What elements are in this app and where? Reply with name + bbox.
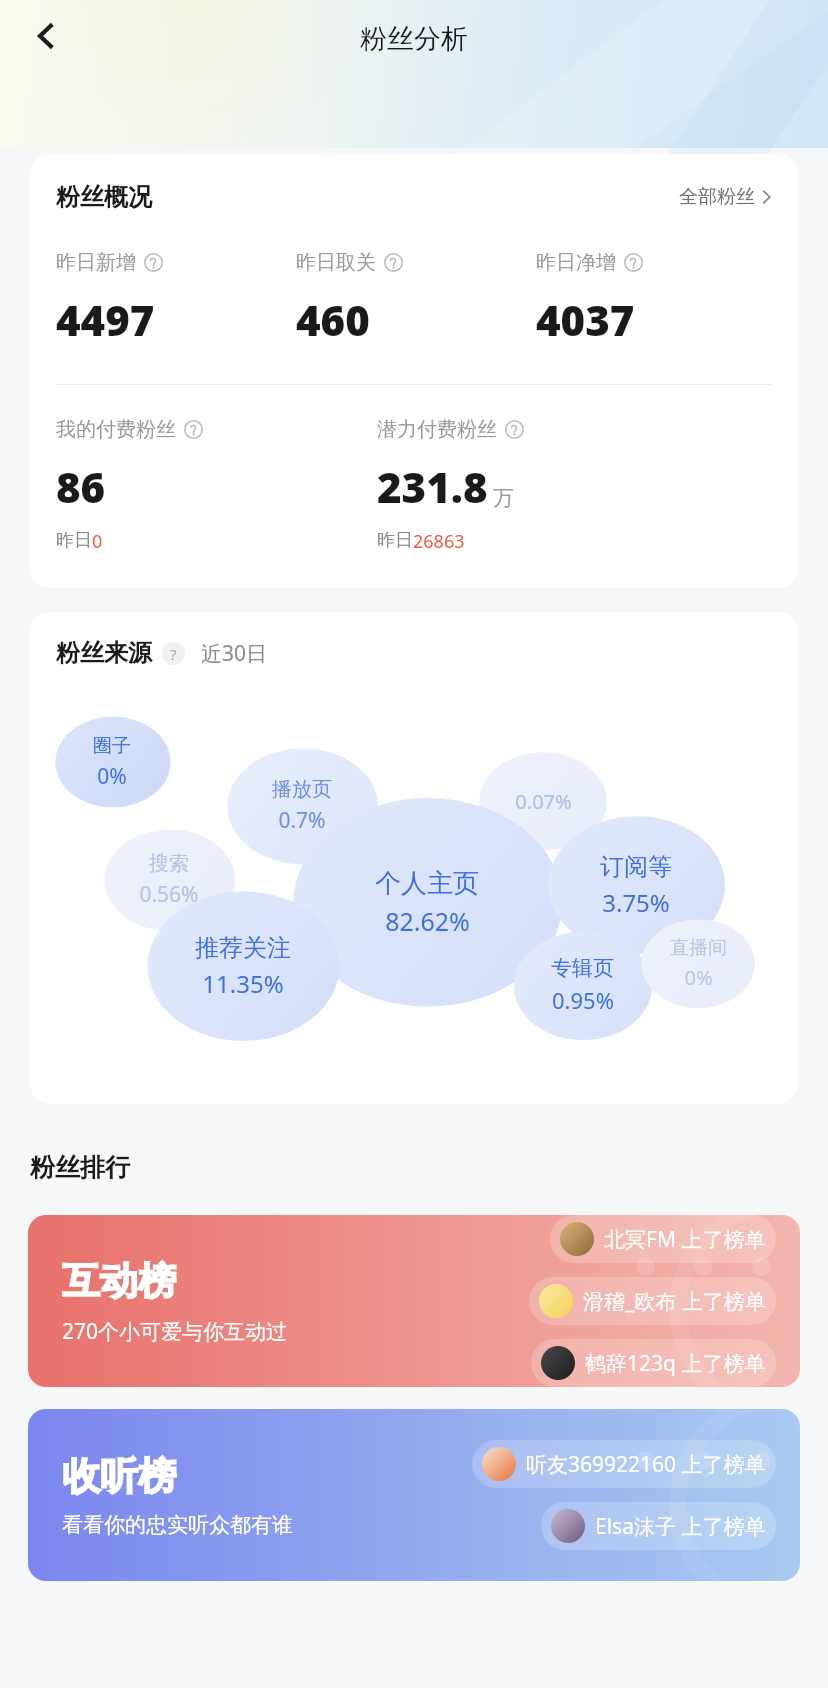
staticText: 专辑页 xyxy=(551,955,614,981)
button[interactable]: 粉丝来源 xyxy=(30,612,798,1104)
staticText: 滑稽_欧布 上了榜单 xyxy=(583,1287,766,1316)
staticText: ? xyxy=(170,644,177,664)
staticText: 直播间 xyxy=(670,936,727,960)
staticText: 昨日 xyxy=(377,529,413,552)
staticText: 11.35% xyxy=(202,967,284,1000)
staticText: 潜力付费粉丝 xyxy=(377,417,497,442)
staticText: 昨日新增 xyxy=(56,250,136,275)
staticText: 我的付费粉丝 xyxy=(56,417,176,442)
staticText: 粉丝来源 xyxy=(56,638,152,668)
staticText: 粉丝排行 xyxy=(30,1152,130,1183)
staticText: 近30日 xyxy=(201,639,268,668)
staticText: 播放页 xyxy=(272,777,332,802)
staticText: 231.8 xyxy=(377,458,488,515)
button[interactable]: 粉丝概况 xyxy=(30,154,798,588)
staticText: 86 xyxy=(56,458,106,515)
staticText: Elsa沫子 上了榜单 xyxy=(595,1512,766,1541)
staticText: 3.75% xyxy=(602,886,670,919)
staticText: 0.7% xyxy=(278,806,326,835)
staticText: 0% xyxy=(684,964,713,991)
staticText: 粉丝分析 xyxy=(360,22,468,56)
button[interactable]: 北冥FM 上了榜单 xyxy=(560,1222,766,1256)
staticText: 昨日净增 xyxy=(536,250,616,275)
staticText: 北冥FM 上了榜单 xyxy=(604,1225,766,1254)
button[interactable]: 全部粉丝 xyxy=(679,185,772,209)
staticText: 270个小可爱与你互动过 xyxy=(62,1317,288,1346)
staticText: 4497 xyxy=(56,291,155,348)
staticText: 鹤辞123q 上了榜单 xyxy=(585,1349,766,1378)
button[interactable]: 鹤辞123q 上了榜单 xyxy=(541,1346,766,1380)
staticText: 全部粉丝 xyxy=(679,185,755,209)
staticText: 460 xyxy=(296,291,370,348)
button[interactable]: Elsa沫子 上了榜单 xyxy=(551,1509,766,1543)
staticText: 看看你的忠实听众都有谁 xyxy=(62,1512,293,1538)
staticText: 昨日 xyxy=(56,529,92,552)
staticText: 昨日取关 xyxy=(296,250,376,275)
staticText: 4037 xyxy=(536,291,635,348)
staticText: 0.56% xyxy=(139,880,199,909)
staticText: 82.62% xyxy=(385,904,470,938)
staticText: 0 xyxy=(92,529,103,554)
staticText: 0.95% xyxy=(552,985,614,1015)
staticText: 订阅等 xyxy=(600,852,672,882)
staticText: 粉丝概况 xyxy=(56,182,152,212)
staticText: 推荐关注 xyxy=(195,933,291,963)
staticText: 圈子 xyxy=(93,734,131,758)
staticText: 互动榜 xyxy=(62,1257,176,1305)
button[interactable]: 听友369922160 上了榜单 xyxy=(482,1447,766,1481)
staticText: 26863 xyxy=(413,529,465,554)
staticText: 个人主页 xyxy=(375,867,479,900)
staticText: 0.07% xyxy=(515,788,572,815)
staticText: 收听榜 xyxy=(62,1452,176,1500)
staticText: 听友369922160 上了榜单 xyxy=(526,1450,766,1479)
button[interactable]: 互动榜 xyxy=(28,1215,800,1387)
staticText: 万 xyxy=(493,485,514,511)
staticText: 0% xyxy=(97,762,127,791)
button[interactable]: 返回 xyxy=(18,8,74,64)
button[interactable]: 收听榜 xyxy=(28,1409,800,1581)
button[interactable]: 滑稽_欧布 上了榜单 xyxy=(539,1284,766,1318)
staticText: 搜索 xyxy=(149,851,189,876)
